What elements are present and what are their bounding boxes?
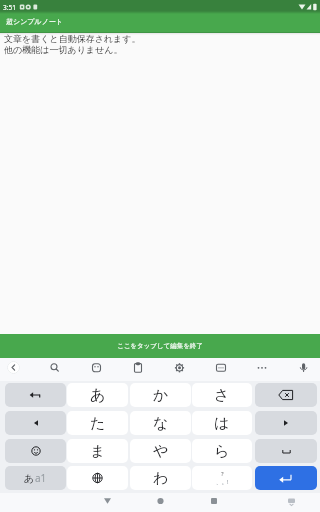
- button[interactable]: や: [130, 439, 191, 463]
- staticText: ここをタップして編集を終了: [117, 342, 203, 350]
- staticText: あ: [24, 472, 35, 485]
- button[interactable]: ま: [67, 439, 128, 463]
- button[interactable]: か: [130, 383, 191, 407]
- staticText: ま: [90, 442, 106, 461]
- button[interactable]: [5, 411, 66, 435]
- staticText: ら: [214, 442, 230, 461]
- staticText: 他の機能は一切ありません。: [4, 44, 123, 55]
- staticText: か: [153, 386, 169, 405]
- staticText: な: [153, 414, 169, 433]
- button[interactable]: [5, 439, 66, 463]
- staticText: ?: [221, 470, 224, 478]
- button[interactable]: [0, 493, 106, 512]
- button[interactable]: な: [130, 411, 191, 435]
- button[interactable]: ここをタップして編集を終了: [0, 334, 320, 358]
- button[interactable]: [213, 493, 320, 512]
- button[interactable]: ら: [192, 439, 252, 463]
- staticText: や: [153, 442, 169, 461]
- button[interactable]: あ: [67, 383, 128, 407]
- staticText: た: [90, 414, 106, 433]
- button[interactable]: あ: [5, 466, 66, 490]
- button[interactable]: [255, 439, 317, 463]
- button[interactable]: は: [192, 411, 252, 435]
- staticText: さ: [214, 386, 230, 405]
- button[interactable]: [0, 358, 320, 382]
- staticText: 文章を書くと自動保存されます。: [4, 33, 141, 44]
- staticText: 3:51: [3, 3, 16, 12]
- button[interactable]: [7, 361, 20, 374]
- staticText: わ: [153, 469, 169, 488]
- staticText: あ: [90, 386, 106, 405]
- button[interactable]: た: [67, 411, 128, 435]
- staticText: は: [214, 414, 230, 433]
- button[interactable]: [106, 493, 213, 512]
- button[interactable]: [5, 383, 66, 407]
- button[interactable]: [255, 466, 317, 490]
- staticText: a1: [35, 471, 47, 485]
- staticText: 、。!: [216, 478, 229, 486]
- button[interactable]: [255, 383, 317, 407]
- button[interactable]: [255, 411, 317, 435]
- button[interactable]: わ: [130, 466, 191, 490]
- button[interactable]: さ: [192, 383, 252, 407]
- button[interactable]: [67, 466, 128, 490]
- staticText: 超シンプルノート: [6, 17, 63, 26]
- button[interactable]: ?: [192, 466, 252, 490]
